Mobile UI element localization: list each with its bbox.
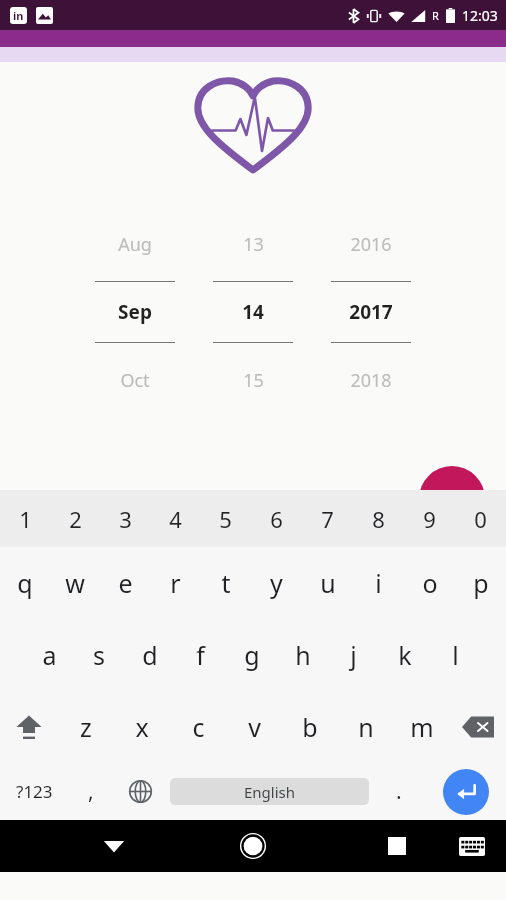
button[interactable]: h: [277, 619, 328, 691]
staticText: R: [432, 8, 439, 23]
staticText: 13: [243, 232, 264, 257]
button[interactable]: 8: [353, 490, 404, 547]
button[interactable]: ,: [68, 763, 114, 820]
staticText: 2: [69, 504, 82, 534]
button[interactable]: l: [430, 619, 481, 691]
staticText: 8: [372, 504, 385, 534]
staticText: 7: [321, 504, 334, 534]
staticText: y: [270, 566, 283, 600]
staticText: 5: [219, 504, 232, 534]
button[interactable]: 6: [251, 490, 302, 547]
staticText: t: [221, 566, 231, 600]
button[interactable]: k: [379, 619, 430, 691]
staticText: g: [244, 638, 260, 672]
button[interactable]: Change language: [114, 763, 166, 820]
staticText: 2016: [350, 232, 392, 257]
staticText: j: [350, 638, 357, 672]
button[interactable]: Recents: [371, 820, 423, 872]
button[interactable]: r: [150, 547, 200, 619]
staticText: o: [422, 566, 438, 600]
staticText: English: [244, 782, 296, 802]
staticText: q: [17, 566, 33, 600]
button[interactable]: c: [170, 691, 226, 763]
button[interactable]: 9: [404, 490, 455, 547]
button[interactable]: Back: [88, 820, 140, 872]
staticText: c: [192, 710, 205, 744]
button[interactable]: j: [328, 619, 379, 691]
staticText: Sep: [118, 299, 152, 325]
button[interactable]: v: [226, 691, 282, 763]
staticText: z: [80, 710, 92, 744]
button[interactable]: e: [100, 547, 150, 619]
staticText: s: [93, 638, 105, 672]
staticText: k: [398, 638, 412, 672]
staticText: 14: [242, 299, 264, 325]
button[interactable]: 5: [200, 490, 251, 547]
staticText: 6: [270, 504, 283, 534]
button[interactable]: w: [50, 547, 100, 619]
staticText: Oct: [120, 368, 150, 393]
button[interactable]: Backspace: [450, 691, 506, 763]
button[interactable]: 7: [302, 490, 353, 547]
button[interactable]: b: [282, 691, 338, 763]
button[interactable]: u: [302, 547, 353, 619]
staticText: 0: [474, 504, 487, 534]
staticText: 9: [423, 504, 436, 534]
button[interactable]: o: [404, 547, 455, 619]
button[interactable]: Aug: [86, 225, 184, 399]
staticText: d: [142, 638, 158, 672]
staticText: ?123: [16, 780, 53, 803]
button[interactable]: q: [0, 547, 50, 619]
staticText: 2018: [350, 368, 392, 393]
button[interactable]: d: [124, 619, 175, 691]
button[interactable]: Keyboard: [450, 824, 494, 868]
button[interactable]: 0: [455, 490, 506, 547]
button[interactable]: m: [394, 691, 450, 763]
button[interactable]: English: [170, 778, 369, 805]
staticText: .: [396, 777, 402, 806]
button[interactable]: ?123: [0, 763, 68, 820]
staticText: e: [118, 566, 133, 600]
button[interactable]: Shift: [0, 691, 57, 763]
button[interactable]: x: [114, 691, 170, 763]
button[interactable]: Enter: [425, 763, 506, 820]
staticText: a: [42, 638, 57, 672]
staticText: l: [452, 638, 459, 672]
button[interactable]: g: [226, 619, 277, 691]
button[interactable]: z: [57, 691, 114, 763]
staticText: r: [170, 566, 181, 600]
staticText: b: [302, 710, 318, 744]
button[interactable]: .: [373, 763, 425, 820]
staticText: in: [13, 8, 24, 23]
staticText: h: [295, 638, 311, 672]
button[interactable]: Next: [419, 466, 485, 532]
staticText: x: [135, 710, 149, 744]
button[interactable]: 2: [50, 490, 100, 547]
button[interactable]: 2016: [322, 225, 420, 399]
staticText: ,: [88, 777, 94, 806]
button[interactable]: 3: [100, 490, 150, 547]
staticText: v: [248, 710, 261, 744]
button[interactable]: y: [251, 547, 302, 619]
button[interactable]: Home: [227, 820, 279, 872]
staticText: u: [320, 566, 336, 600]
button[interactable]: 4: [150, 490, 200, 547]
button[interactable]: n: [338, 691, 394, 763]
button[interactable]: i: [353, 547, 404, 619]
staticText: 3: [119, 504, 132, 534]
staticText: 1: [19, 504, 32, 534]
staticText: p: [473, 566, 489, 600]
staticText: 2017: [349, 299, 393, 325]
staticText: w: [65, 566, 85, 600]
staticText: f: [196, 638, 205, 672]
staticText: m: [410, 710, 434, 744]
button[interactable]: f: [175, 619, 226, 691]
button[interactable]: 13: [204, 225, 302, 399]
button[interactable]: s: [74, 619, 124, 691]
button[interactable]: t: [200, 547, 251, 619]
staticText: Aug: [118, 232, 152, 257]
button[interactable]: p: [455, 547, 506, 619]
button[interactable]: a: [24, 619, 74, 691]
button[interactable]: 1: [0, 490, 50, 547]
staticText: 4: [169, 504, 182, 534]
